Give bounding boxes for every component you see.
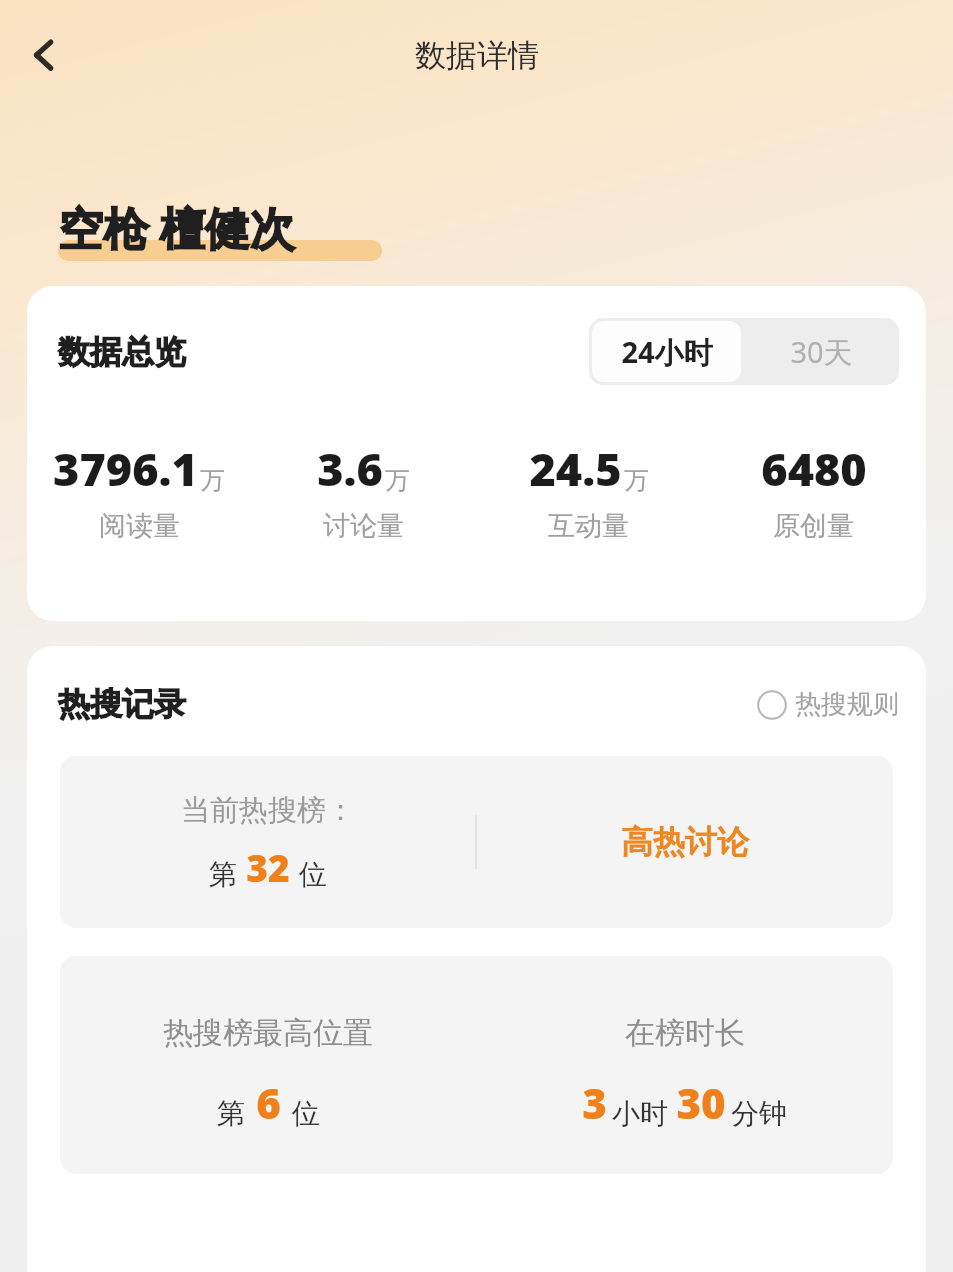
button[interactable]: 当前热搜榜： [60,756,893,928]
button[interactable]: 30天 [744,318,899,385]
staticText: 万 [624,465,649,496]
staticText: 热搜榜最高位置 [163,1014,373,1052]
staticText: 当前热搜榜： [181,792,355,829]
staticText: 在榜时长 [625,1014,745,1052]
button[interactable]: 热搜榜最高位置 [60,956,893,1174]
staticText: 小时 [612,1096,668,1131]
staticText: 32 [246,842,290,892]
staticText: 原创量 [773,509,854,543]
staticText: 万 [200,465,225,496]
staticText: 互动量 [548,509,629,543]
staticText: 空枪 檀健次 [58,197,295,258]
staticText: 24小时 [621,332,713,372]
staticText: 24.5 [529,438,622,499]
staticText: 6 [256,1074,281,1131]
staticText: 30 [676,1074,726,1131]
staticText: 3.6 [317,438,383,499]
staticText: 位 [292,1096,320,1131]
staticText: 阅读量 [99,509,180,543]
staticText: 30天 [790,332,853,372]
staticText: 热搜规则 [795,688,899,721]
staticText: 3 [582,1074,607,1131]
staticText: 讨论量 [323,509,404,543]
staticText: 6480 [761,438,867,499]
button[interactable]: Back [8,19,80,91]
staticText: 数据总览 [58,332,186,372]
staticText: 位 [299,857,327,892]
staticText: 数据详情 [415,36,539,75]
staticText: 3796.1 [53,438,198,499]
button[interactable]: 热搜规则 [757,688,899,721]
staticText: 热搜记录 [58,684,186,724]
staticText: 万 [385,465,410,496]
staticText: 分钟 [731,1096,787,1131]
staticText: 高热讨论 [621,822,749,862]
staticText: 第 [209,857,237,892]
button[interactable]: 24小时 [592,321,741,382]
staticText: 第 [217,1096,245,1131]
